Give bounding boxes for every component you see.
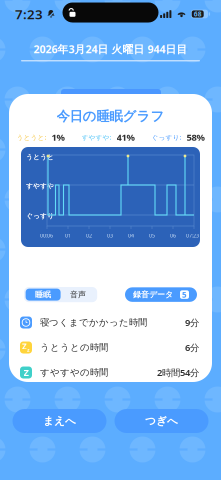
staticText: 03 xyxy=(107,232,113,239)
staticText: z xyxy=(27,346,30,353)
staticText: 1% xyxy=(51,131,64,143)
staticText: 05 xyxy=(149,232,155,239)
staticText: すやすや: xyxy=(81,133,111,142)
button[interactable]: 寝つくまでかかった時間 xyxy=(9,310,212,335)
staticText: 6分 xyxy=(185,341,199,354)
staticText: 06 xyxy=(170,232,176,239)
staticText: うとうと: xyxy=(16,133,46,142)
staticText: ぐっすり: xyxy=(151,133,181,142)
staticText: 音声 xyxy=(70,290,86,299)
staticText: 7:23 xyxy=(15,5,43,23)
staticText: 02 xyxy=(86,232,92,239)
staticText: うとうとの時間 xyxy=(40,342,108,353)
staticText: 07:23 xyxy=(186,232,199,239)
staticText: 41% xyxy=(116,131,134,143)
staticText: 2時間54分 xyxy=(157,366,199,379)
staticText: つぎへ xyxy=(145,414,178,427)
staticText: 2026年3月24日 火曜日 944日目 xyxy=(33,42,187,56)
staticText: 9分 xyxy=(185,316,199,329)
staticText: ぐっすり xyxy=(26,212,54,220)
staticText: Z xyxy=(23,366,28,379)
staticText: 睡眠 xyxy=(35,290,51,299)
button[interactable]: 睡眠 xyxy=(26,289,61,301)
staticText: 00:06 xyxy=(40,232,53,239)
button[interactable]: まえへ xyxy=(12,409,106,433)
staticText: Z xyxy=(22,341,27,352)
staticText: すやすやの時間 xyxy=(40,367,108,378)
staticText: 01 xyxy=(65,232,71,239)
button[interactable]: つぎへ xyxy=(114,409,208,433)
staticText: 録音データ xyxy=(133,290,173,299)
staticText: 58% xyxy=(186,131,204,143)
button[interactable]: Z xyxy=(9,335,212,360)
button[interactable]: Z xyxy=(9,360,212,385)
button[interactable]: 録音データ xyxy=(125,287,197,302)
staticText: 68 xyxy=(194,10,202,18)
staticText: すやすや xyxy=(26,182,54,190)
staticText: まえへ xyxy=(43,414,76,427)
button[interactable]: 音声 xyxy=(61,289,96,301)
staticText: 寝つくまでかかった時間 xyxy=(40,317,147,328)
staticText: うとうと xyxy=(26,153,54,161)
staticText: 5 xyxy=(182,289,187,300)
staticText: 04 xyxy=(128,232,134,239)
staticText: 今日の睡眠グラフ xyxy=(56,108,164,124)
